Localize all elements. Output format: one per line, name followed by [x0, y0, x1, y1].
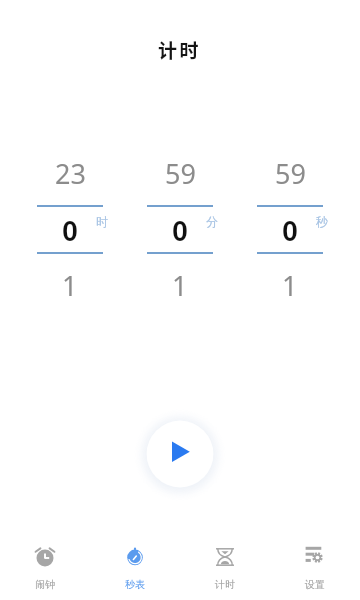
staticText: 0	[282, 210, 298, 249]
staticText: 闹钟	[35, 578, 55, 591]
staticText: 1	[62, 267, 78, 304]
button[interactable]: 计时	[180, 544, 270, 600]
staticText: 0	[172, 210, 188, 249]
staticText: 0	[62, 210, 78, 249]
staticText: 1	[172, 267, 188, 304]
staticText: 计时	[215, 578, 235, 591]
staticText: 23	[55, 155, 86, 192]
button[interactable]: 秒表	[90, 544, 180, 600]
staticText: 计时	[158, 36, 202, 64]
button[interactable]: 闹钟	[0, 544, 90, 600]
staticText: 秒	[316, 214, 328, 229]
button[interactable]: 设置	[270, 544, 360, 600]
staticText: 设置	[305, 578, 325, 591]
staticText: 时	[96, 214, 108, 229]
staticText: 秒表	[125, 578, 145, 591]
staticText: 59	[275, 155, 306, 192]
staticText: 59	[165, 155, 196, 192]
button[interactable]: Start timer	[146, 419, 214, 487]
staticText: 1	[282, 267, 298, 304]
staticText: 分	[206, 214, 218, 229]
